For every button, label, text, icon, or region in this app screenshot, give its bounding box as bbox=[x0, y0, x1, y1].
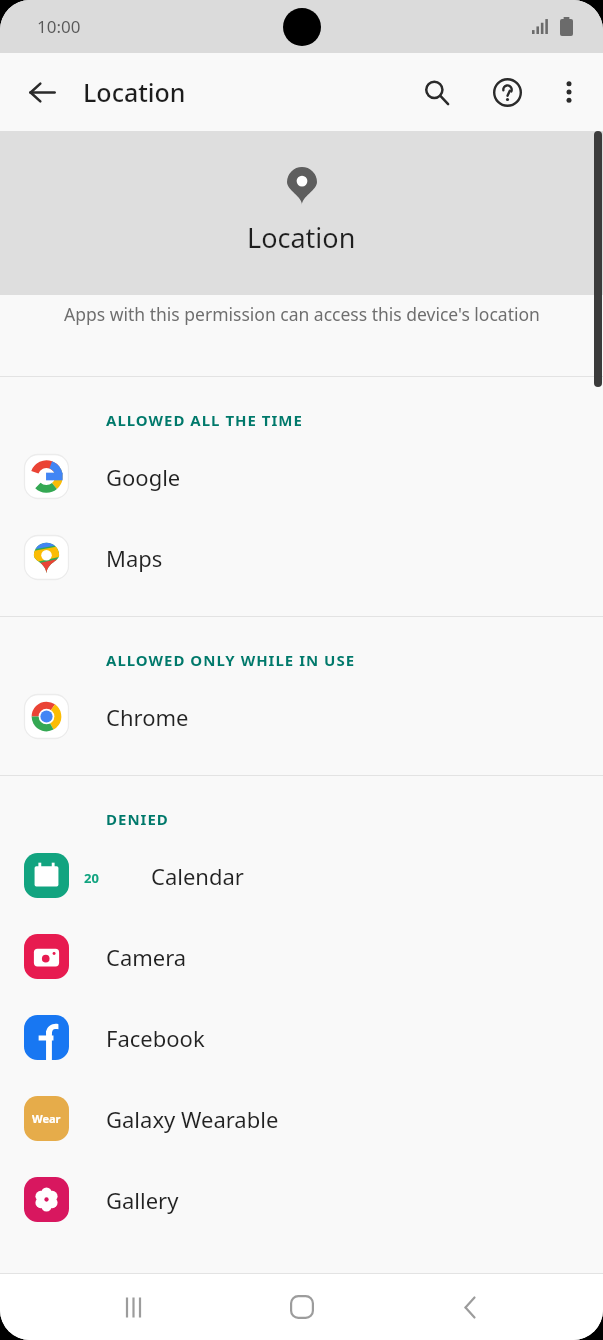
button[interactable]: Maps bbox=[0, 517, 603, 598]
button[interactable]: More options bbox=[542, 65, 596, 119]
staticText: Location bbox=[83, 75, 186, 109]
button[interactable]: Recent apps bbox=[97, 1274, 169, 1340]
staticText: Calendar bbox=[151, 861, 244, 891]
staticText: Gallery bbox=[106, 1185, 179, 1215]
button[interactable]: Chrome bbox=[0, 676, 603, 757]
button[interactable]: Camera bbox=[0, 916, 603, 997]
button[interactable]: Google bbox=[0, 436, 603, 517]
staticText: Wear bbox=[32, 1111, 61, 1126]
staticText: ALLOWED ALL THE TIME bbox=[106, 410, 303, 430]
staticText: Apps with this permission can access thi… bbox=[64, 302, 540, 326]
button[interactable]: Facebook bbox=[0, 997, 603, 1078]
button[interactable]: Back bbox=[15, 65, 69, 119]
button[interactable]: 20 bbox=[0, 835, 603, 916]
button[interactable]: Home bbox=[266, 1274, 338, 1340]
staticText: DENIED bbox=[106, 809, 169, 829]
staticText: Facebook bbox=[106, 1023, 205, 1053]
staticText: Maps bbox=[106, 543, 163, 573]
button[interactable]: Gallery bbox=[0, 1159, 603, 1240]
staticText: Google bbox=[106, 462, 181, 492]
button[interactable]: Search bbox=[409, 65, 463, 119]
staticText: 10:00 bbox=[37, 15, 81, 38]
button[interactable]: Back bbox=[434, 1274, 506, 1340]
staticText: ALLOWED ONLY WHILE IN USE bbox=[106, 650, 356, 670]
button[interactable]: Help bbox=[480, 65, 534, 119]
staticText: Chrome bbox=[106, 702, 189, 732]
button[interactable]: Wear bbox=[0, 1078, 603, 1159]
staticText: 20 bbox=[84, 869, 99, 887]
staticText: Galaxy Wearable bbox=[106, 1104, 279, 1134]
staticText: Camera bbox=[106, 942, 187, 972]
staticText: Location bbox=[247, 219, 356, 256]
